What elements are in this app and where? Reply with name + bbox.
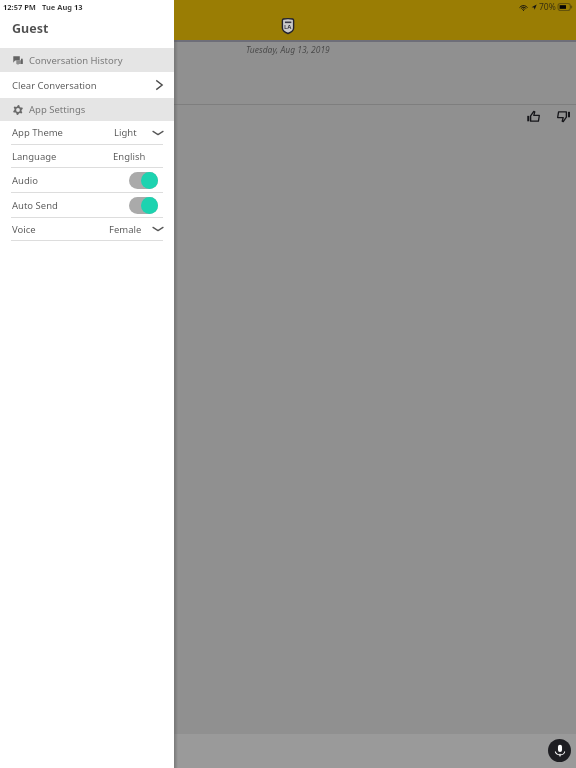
staticText: 12:57 PM bbox=[3, 2, 36, 12]
staticText: Light bbox=[114, 126, 137, 139]
staticText: Clear Conversation bbox=[12, 79, 97, 92]
button[interactable]: Voice bbox=[0, 218, 174, 240]
staticText: Audio bbox=[12, 174, 38, 187]
button[interactable]: Audio bbox=[0, 168, 174, 192]
staticText: Auto Send bbox=[12, 199, 58, 212]
button[interactable]: Thumbs down bbox=[553, 106, 573, 126]
staticText: App Theme bbox=[12, 126, 63, 139]
staticText: Language bbox=[12, 150, 57, 163]
staticText: App Settings bbox=[29, 103, 86, 116]
button[interactable]: Conversation History bbox=[0, 48, 174, 72]
staticText: Tue Aug 13 bbox=[42, 2, 83, 12]
staticText: Conversation History bbox=[29, 54, 123, 67]
button[interactable]: Language bbox=[0, 145, 174, 167]
button[interactable]: Auto Send bbox=[0, 193, 174, 217]
staticText: 70% bbox=[539, 1, 556, 13]
button[interactable]: App Theme bbox=[0, 121, 174, 144]
staticText: Female bbox=[109, 223, 142, 236]
button[interactable]: Voice input microphone bbox=[548, 739, 571, 762]
button[interactable]: Thumbs up bbox=[523, 106, 543, 126]
staticText: English bbox=[113, 150, 146, 163]
button[interactable]: Clear Conversation bbox=[0, 72, 174, 98]
staticText: LA bbox=[284, 23, 292, 31]
button[interactable]: App logo bbox=[281, 18, 295, 34]
staticText: Voice bbox=[12, 223, 36, 236]
staticText: Guest bbox=[12, 20, 49, 37]
button[interactable]: App Settings bbox=[0, 98, 174, 121]
staticText: Tuesday, Aug 13, 2019 bbox=[246, 44, 330, 56]
